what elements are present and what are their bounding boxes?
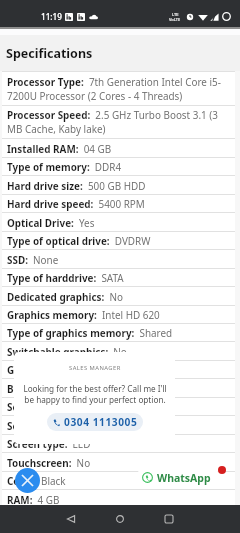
button[interactable]: Hard drive speed: 5400 RPM — [2, 195, 235, 212]
button[interactable]: Processor Type: 7th Generation Intel Cor… — [2, 72, 235, 105]
staticText: 0304 1113005 — [64, 415, 138, 429]
staticText: Processor Type: 7th Generation Intel Cor… — [7, 75, 232, 103]
button[interactable]: Dedicated graphics: No — [2, 287, 235, 305]
staticText: Dedicated graphics: No — [7, 290, 123, 303]
staticText: Looking for the best offer? Call me I'll… — [23, 383, 167, 405]
button[interactable]: WhatsApp — [136, 468, 220, 487]
staticText: Optical Drive: Yes — [7, 216, 95, 229]
staticText: Type of harddrive: SATA — [7, 271, 124, 284]
button[interactable]: Home — [109, 508, 131, 530]
button[interactable]: Type of graphics memory: Shared — [2, 324, 235, 341]
staticText: Graphics memory: Intel HD 620 — [7, 308, 160, 321]
staticText: Processor Speed: 2.5 GHz Turbo Boost 3.1… — [7, 108, 232, 136]
staticText: Screen type: LED — [7, 437, 91, 450]
staticText: LTE — [172, 12, 179, 17]
button[interactable]: Processor Speed: 2.5 GHz Turbo Boost 3.1… — [2, 106, 235, 138]
staticText: Screen Resolution: 1366 x 768 — [7, 419, 154, 432]
staticText: Specifications — [6, 45, 93, 62]
button[interactable]: Installed RAM: 04 GB — [2, 139, 235, 157]
button[interactable]: Back — [60, 508, 82, 530]
button[interactable]: Type of memory: DDR4 — [2, 158, 235, 175]
staticText: WhatsApp — [157, 471, 211, 485]
button[interactable]: RAM: 4 GB — [2, 490, 235, 508]
button[interactable]: Screen type: LED — [2, 435, 235, 452]
button[interactable]: Hard drive size: 500 GB HDD — [2, 176, 235, 194]
button[interactable]: Recent apps — [158, 508, 180, 530]
button[interactable]: Color: Black — [2, 472, 235, 489]
staticText: Hard drive speed: 5400 RPM — [7, 197, 145, 210]
staticText: SALES MANAGER — [69, 364, 121, 372]
button[interactable]: Screen Resolution: 1366 x 768 — [2, 416, 235, 434]
staticText: Type of graphics memory: Shared — [7, 326, 173, 339]
button[interactable]: 0304 1113005 — [47, 413, 143, 431]
button[interactable]: Built in Camera: Yes — [2, 379, 235, 397]
staticText: SSD: None — [7, 253, 59, 266]
button[interactable]: Close chat — [15, 468, 40, 493]
staticText: Switchable graphics: No — [7, 345, 127, 358]
staticText: Graphics Card: Intel HD Graphics — [7, 363, 165, 376]
button[interactable]: Type of optical drive: DVDRW — [2, 232, 235, 249]
staticText: Touchscreen: No — [7, 456, 91, 469]
staticText: Hard drive size: 500 GB HDD — [7, 179, 146, 192]
staticText: Installed RAM: 04 GB — [7, 142, 112, 155]
button[interactable]: Screen size: 15.6 — [2, 398, 235, 415]
staticText: Color: Black — [7, 474, 66, 487]
button[interactable]: Type of harddrive: SATA — [2, 269, 235, 286]
button[interactable]: Graphics memory: Intel HD 620 — [2, 306, 235, 323]
button[interactable]: Optical Drive: Yes — [2, 213, 235, 231]
button[interactable]: SALES MANAGER — [14, 352, 175, 444]
staticText: RAM: 4 GB — [7, 493, 60, 506]
staticText: Type of memory: DDR4 — [7, 160, 122, 173]
staticText: VoLTE — [169, 17, 181, 22]
button[interactable]: Switchable graphics: No — [2, 342, 235, 360]
staticText: Type of optical drive: DVDRW — [7, 234, 151, 247]
button[interactable]: Touchscreen: No — [2, 453, 235, 471]
button[interactable]: Graphics Card: Intel HD Graphics — [2, 361, 235, 378]
staticText: 11:19 — [41, 11, 62, 22]
staticText: Built in Camera: Yes — [7, 382, 107, 395]
button[interactable]: SSD: None — [2, 250, 235, 268]
staticText: Screen size: 15.6 — [7, 400, 89, 413]
